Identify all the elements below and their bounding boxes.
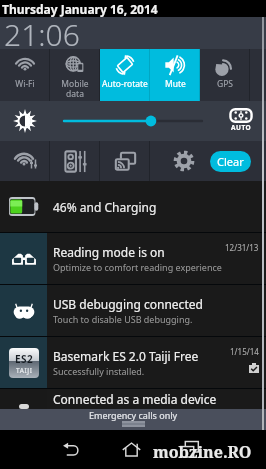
staticText: Connected as a media device <box>53 391 217 407</box>
staticText: USB debugging connected <box>53 296 203 312</box>
button[interactable]: Wi-Fi <box>0 49 50 101</box>
staticText: Optimize to comfort reading experience <box>53 261 222 273</box>
staticText: Basemark ES 2.0 Taiji Free <box>53 348 199 364</box>
staticText: 12/31/13 <box>225 242 259 253</box>
staticText: 21:06 <box>4 14 80 46</box>
button[interactable]: Mobile data <box>50 49 100 101</box>
staticText: 46% and Charging <box>53 199 157 215</box>
button[interactable]: Connected as a media device <box>0 389 266 409</box>
staticText: Mute <box>165 78 186 90</box>
staticText: Clear <box>217 154 244 169</box>
button[interactable]: Back <box>50 430 90 469</box>
staticText: Successfully installed. <box>53 365 145 377</box>
staticText: ES2 <box>15 352 34 366</box>
staticText: Auto-rotate <box>102 78 148 90</box>
button[interactable]: Recent apps <box>169 430 209 469</box>
staticText: Emergency calls only <box>89 409 178 421</box>
button[interactable]: Sound settings <box>50 141 100 181</box>
button[interactable]: Screen mirroring <box>100 141 150 181</box>
button[interactable]: Settings <box>167 141 201 181</box>
staticText: Reading mode is on <box>53 244 165 260</box>
staticText: GPS <box>217 78 233 90</box>
button[interactable]: Home <box>111 430 151 469</box>
button[interactable]: ES2 <box>0 337 266 388</box>
button[interactable]: Mute <box>150 49 200 101</box>
staticText: Touch to disable USB debugging. <box>53 313 193 325</box>
button[interactable]: 46% and Charging <box>0 181 266 232</box>
button[interactable]: Reading mode is on <box>0 233 266 284</box>
staticText: TAIJI <box>16 366 33 375</box>
staticText: 1/15/14 <box>230 346 259 357</box>
button[interactable]: Wi-Fi settings <box>0 141 50 181</box>
button[interactable]: Clear <box>210 151 251 172</box>
staticText: Mobile data <box>61 78 89 99</box>
staticText: mobzine.RO <box>153 441 252 463</box>
button[interactable]: Brightness <box>0 101 50 141</box>
staticText: AUTO <box>231 123 252 132</box>
staticText: Wi-Fi <box>15 78 35 90</box>
button[interactable]: Auto brightness <box>216 101 266 141</box>
button[interactable]: Auto-rotate <box>100 49 150 101</box>
button[interactable]: GPS <box>200 49 250 101</box>
staticText: Thursday January 16, 2014 <box>2 1 158 17</box>
button[interactable]: USB debugging connected <box>0 285 266 336</box>
